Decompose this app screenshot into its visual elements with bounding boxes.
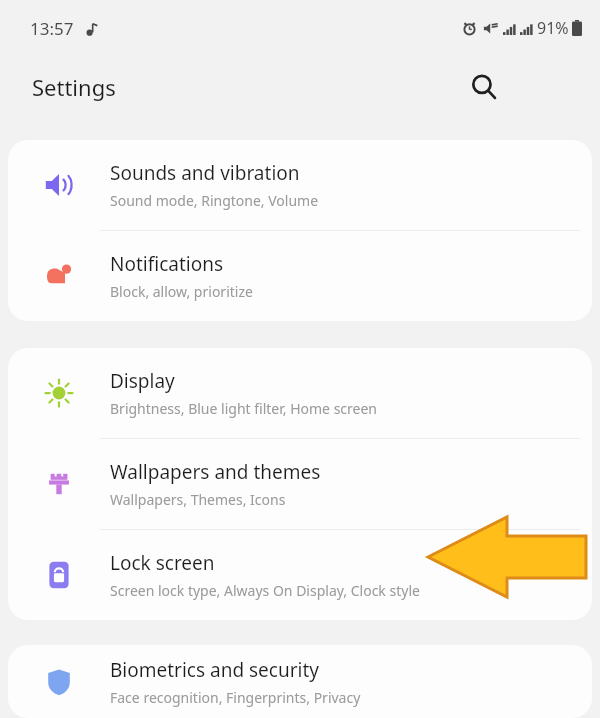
button[interactable]: Display: [8, 348, 592, 438]
staticText: Wallpapers and themes: [110, 459, 321, 485]
button[interactable]: Lock screen: [8, 530, 592, 620]
staticText: Wallpapers, Themes, Icons: [110, 490, 286, 509]
staticText: Face recognition, Fingerprints, Privacy: [110, 688, 361, 707]
staticText: Screen lock type, Always On Display, Clo…: [110, 581, 420, 600]
button[interactable]: Sounds and vibration: [8, 140, 592, 230]
staticText: 13:57: [30, 17, 74, 40]
staticText: Block, allow, prioritize: [110, 282, 253, 301]
staticText: 91%: [537, 17, 569, 39]
staticText: Display: [110, 368, 175, 394]
button[interactable]: Biometrics and security: [8, 645, 592, 718]
button[interactable]: Notifications: [8, 231, 592, 321]
staticText: Sounds and vibration: [110, 160, 300, 186]
staticText: Sound mode, Ringtone, Volume: [110, 191, 319, 210]
staticText: Settings: [32, 72, 116, 102]
button[interactable]: Wallpapers and themes: [8, 439, 592, 529]
staticText: Biometrics and security: [110, 657, 320, 683]
staticText: Brightness, Blue light filter, Home scre…: [110, 399, 378, 418]
button[interactable]: Search: [462, 65, 506, 109]
staticText: Lock screen: [110, 550, 215, 576]
staticText: Notifications: [110, 251, 224, 277]
